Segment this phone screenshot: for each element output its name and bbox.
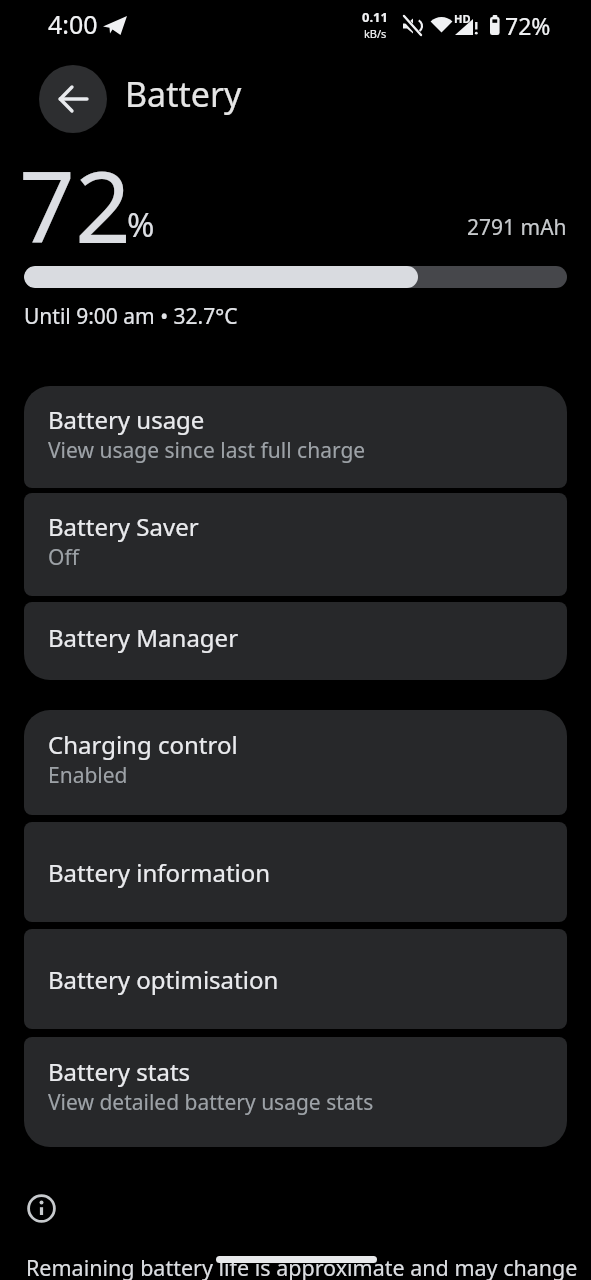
staticText: Battery information	[48, 856, 271, 889]
staticText: Battery Saver	[48, 510, 199, 543]
staticText: 72	[19, 138, 132, 271]
staticText: 2791 mAh	[467, 213, 567, 242]
staticText: Enabled	[48, 761, 128, 790]
staticText: HD	[454, 11, 471, 26]
staticText: Off	[48, 543, 79, 572]
staticText: Battery usage	[48, 403, 205, 436]
staticText: Until 9:00 am • 32.7°C	[24, 302, 238, 331]
staticText: Remaining battery life is approximate an…	[26, 1253, 578, 1280]
staticText: Charging control	[48, 728, 238, 761]
staticText: Battery	[125, 71, 242, 117]
staticText: Battery stats	[48, 1055, 191, 1088]
staticText: 4:00	[48, 7, 98, 41]
staticText: kB/s	[364, 26, 387, 41]
staticText: %	[127, 202, 155, 247]
staticText: 0.11	[362, 8, 388, 26]
staticText: View usage since last full charge	[48, 436, 366, 465]
staticText: View detailed battery usage stats	[48, 1088, 374, 1117]
staticText: 72%	[505, 10, 551, 41]
staticText: Battery Manager	[48, 621, 239, 654]
staticText: Battery optimisation	[48, 963, 279, 996]
